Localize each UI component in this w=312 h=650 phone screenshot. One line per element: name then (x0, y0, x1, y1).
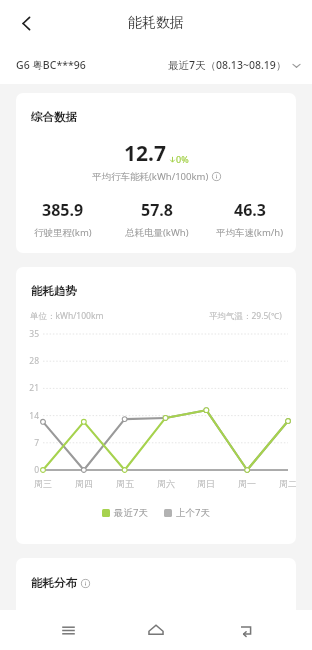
staticText: 28 (18, 355, 39, 367)
button[interactable]: Back (224, 610, 266, 650)
staticText: 最近7天（08.13~08.19） (168, 58, 287, 72)
staticText: 35 (18, 328, 39, 340)
staticText: 平均车速(km/h) (216, 226, 284, 239)
button[interactable]: 最近7天（08.13~08.19） (168, 58, 302, 72)
staticText: 周三 (30, 478, 56, 489)
staticText: 周二 (275, 478, 296, 489)
staticText: 21 (18, 382, 39, 394)
staticText: 综合数据 (31, 110, 77, 124)
staticText: 57.8 (141, 199, 173, 221)
staticText: 14 (18, 410, 39, 422)
staticText: 最近7天 (114, 506, 148, 519)
staticText: 总耗电量(kWh) (125, 226, 189, 239)
staticText: 周五 (112, 478, 138, 489)
staticText: 平均气温：29.5(℃) (209, 310, 282, 322)
staticText: 能耗数据 (128, 14, 184, 32)
staticText: 平均行车能耗(kWh/100km) (92, 170, 209, 183)
staticText: 单位：kWh/100km (30, 310, 104, 322)
staticText: 46.3 (234, 199, 266, 221)
staticText: 上个7天 (176, 506, 210, 519)
button[interactable]: Back (8, 5, 44, 41)
staticText: 0 (18, 464, 39, 476)
staticText: 周一 (234, 478, 260, 489)
staticText: 12.7 (124, 139, 166, 168)
staticText: 周日 (193, 478, 219, 489)
staticText: 7 (18, 437, 39, 449)
staticText: 能耗分布 (31, 576, 77, 590)
staticText: 行驶里程(km) (34, 226, 92, 239)
staticText: 周四 (71, 478, 97, 489)
staticText: 能耗趋势 (31, 284, 77, 298)
button[interactable]: Recent apps (47, 610, 89, 650)
staticText: 385.9 (42, 199, 84, 221)
staticText: 周六 (153, 478, 179, 489)
staticText: 0% (176, 153, 189, 165)
staticText: G6 粤BC***96 (16, 58, 86, 72)
button[interactable]: Home (135, 610, 177, 650)
